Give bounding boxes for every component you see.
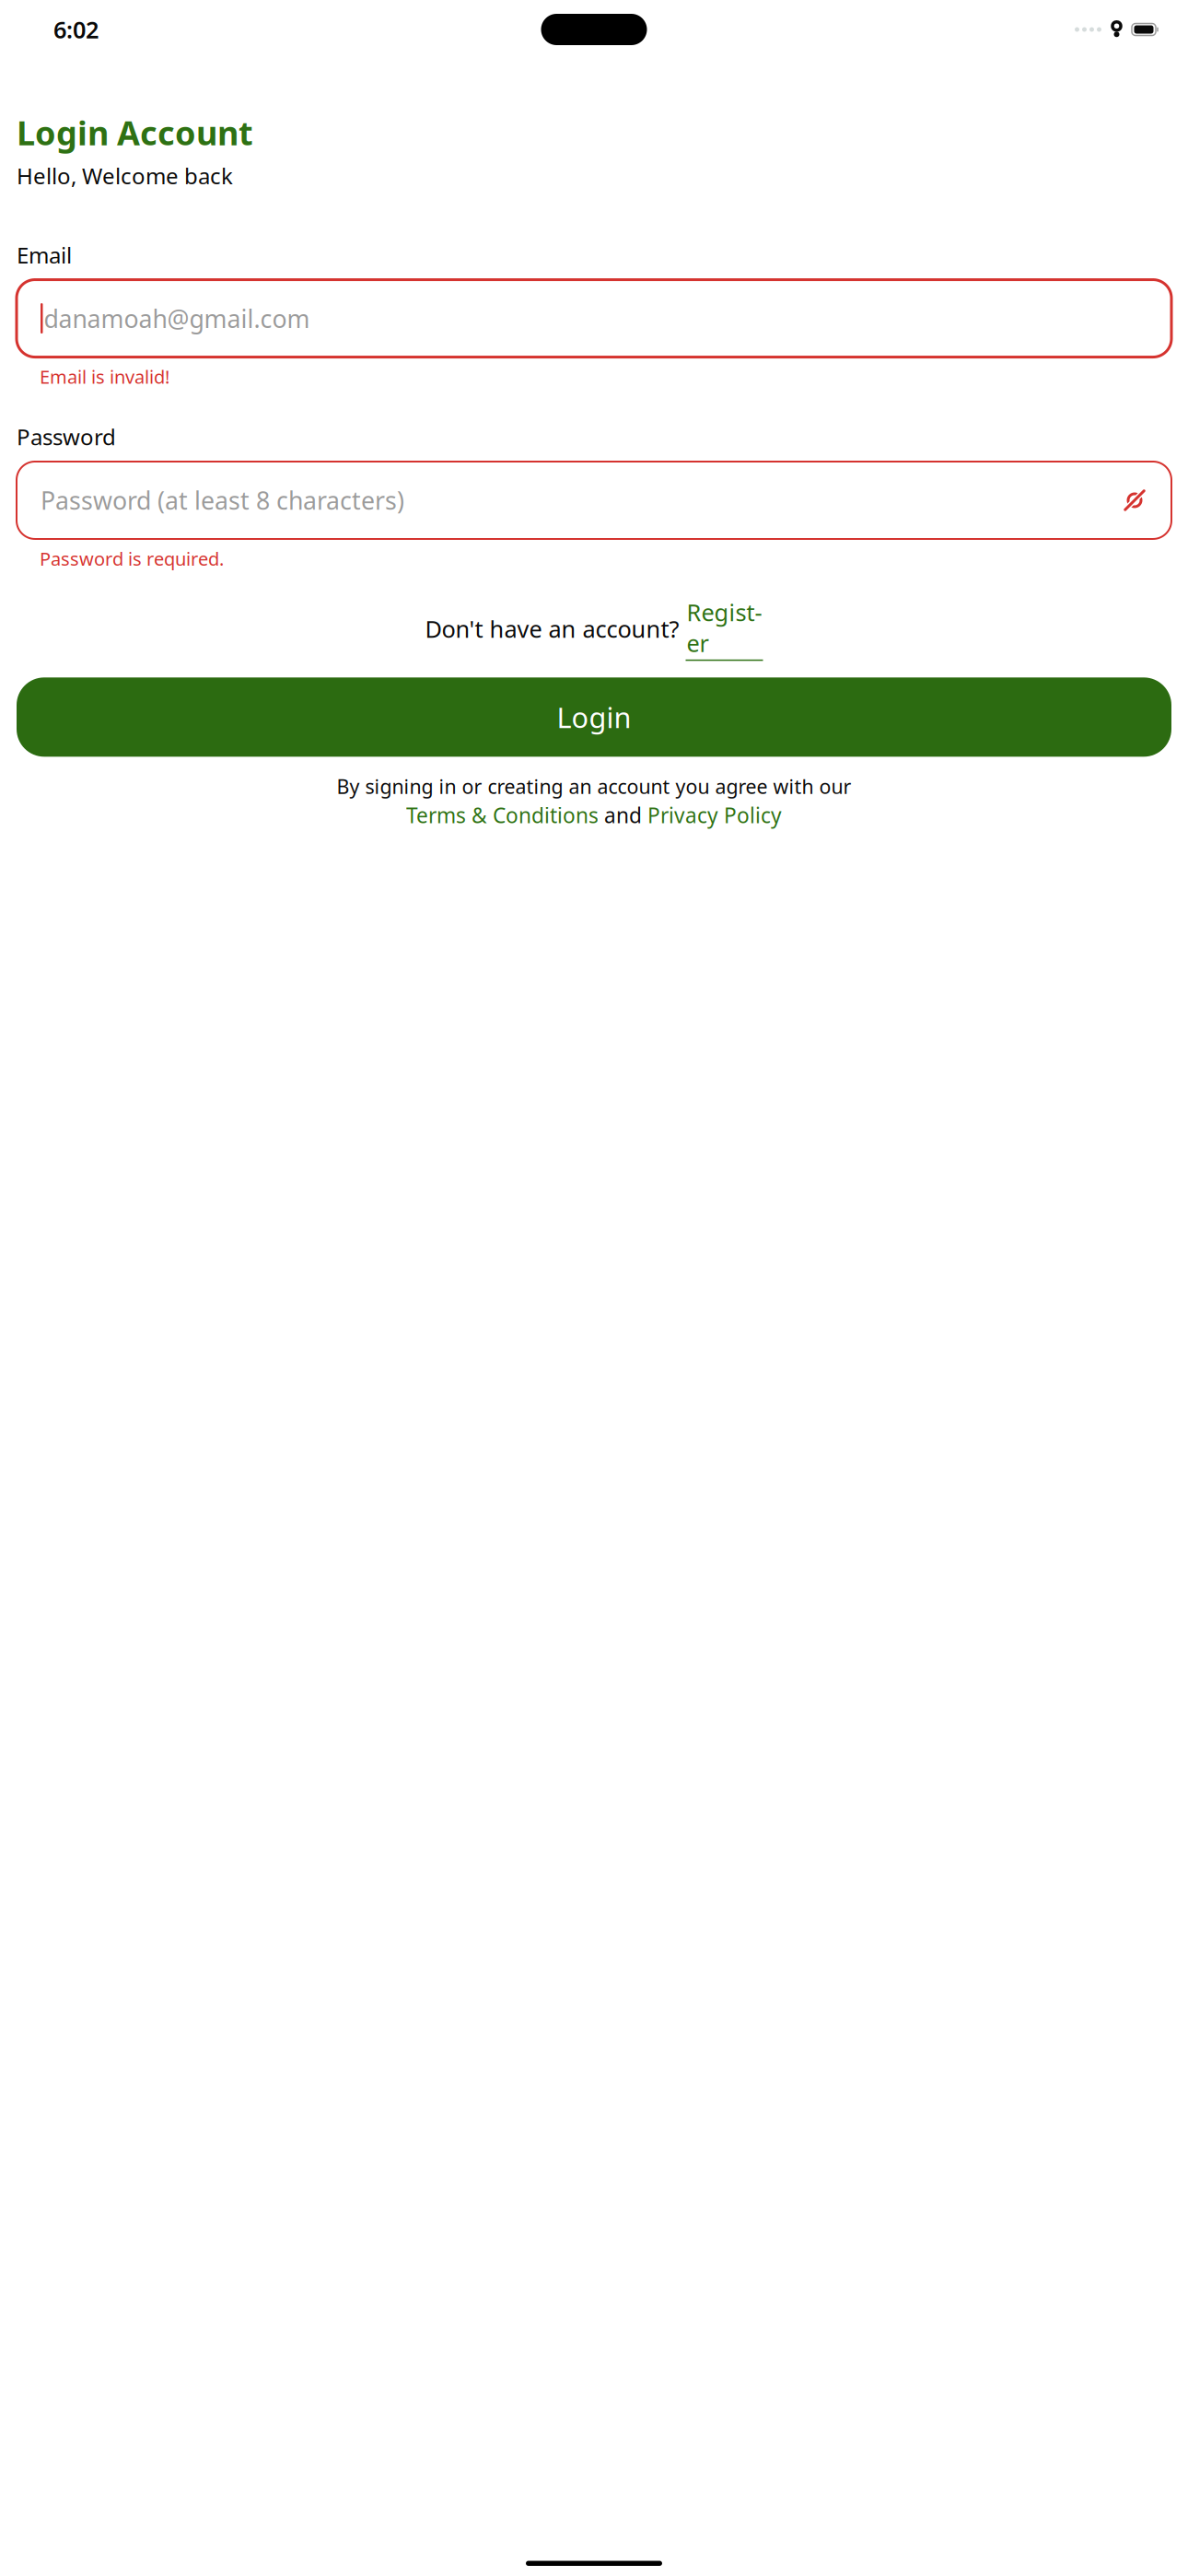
button[interactable]: Register: [686, 597, 763, 661]
staticText: Email is invalid!: [40, 364, 169, 389]
staticText: Login: [557, 698, 631, 736]
button[interactable]: Login: [17, 677, 1171, 757]
staticText: 6:02: [53, 14, 99, 45]
staticText: danamoah@gmail.com: [44, 302, 310, 335]
staticText: Login Account: [17, 111, 253, 155]
button[interactable]: Terms & Conditions: [406, 801, 599, 829]
button[interactable]: Privacy Policy: [647, 801, 782, 829]
staticText: Password is required.: [40, 546, 224, 571]
button[interactable]: Show password: [1116, 482, 1153, 519]
staticText: Register: [687, 597, 762, 659]
staticText: Hello, Welcome back: [17, 161, 233, 190]
staticText: Password (at least 8 characters): [41, 484, 404, 517]
staticText: Email: [17, 240, 72, 270]
staticText: Don't have an account?: [425, 613, 686, 644]
staticText: By signing in or creating an account you…: [337, 773, 851, 799]
staticText: and: [599, 801, 647, 829]
staticText: Terms & Conditions: [406, 801, 599, 829]
staticText: Privacy Policy: [647, 801, 782, 829]
staticText: Password: [17, 422, 116, 451]
